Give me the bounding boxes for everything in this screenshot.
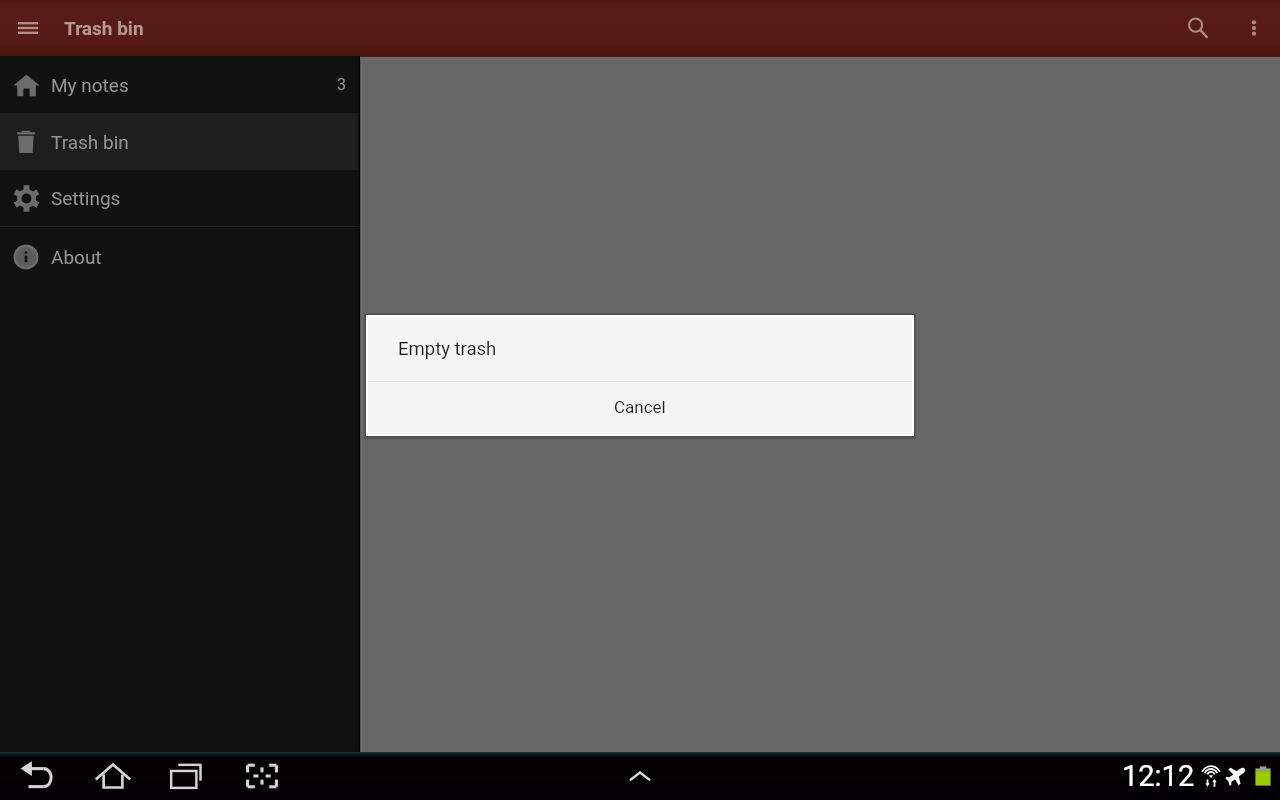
- button[interactable]: Empty trash: [368, 317, 912, 381]
- button[interactable]: My notes: [0, 56, 360, 113]
- button[interactable]: Trash bin: [0, 113, 360, 170]
- button[interactable]: Home: [89, 752, 137, 800]
- staticText: Empty trash: [398, 338, 497, 360]
- staticText: Trash bin: [51, 131, 129, 153]
- staticText: My notes: [51, 74, 129, 96]
- button[interactable]: More options: [1227, 0, 1280, 56]
- button[interactable]: Cancel: [368, 383, 912, 434]
- button[interactable]: Screenshot: [238, 752, 286, 800]
- button[interactable]: About: [0, 228, 360, 285]
- button[interactable]: Search: [1169, 0, 1227, 56]
- button[interactable]: Show notifications: [616, 752, 664, 800]
- button[interactable]: Back: [14, 752, 62, 800]
- staticText: 12:12: [1122, 759, 1195, 793]
- staticText: Trash bin: [64, 17, 144, 39]
- staticText: Settings: [51, 187, 121, 209]
- button[interactable]: Settings: [0, 170, 360, 226]
- staticText: Cancel: [614, 397, 666, 417]
- staticText: 3: [337, 75, 346, 94]
- button[interactable]: Open navigation drawer: [0, 0, 56, 56]
- button[interactable]: Recent apps: [163, 752, 211, 800]
- staticText: About: [51, 246, 102, 268]
